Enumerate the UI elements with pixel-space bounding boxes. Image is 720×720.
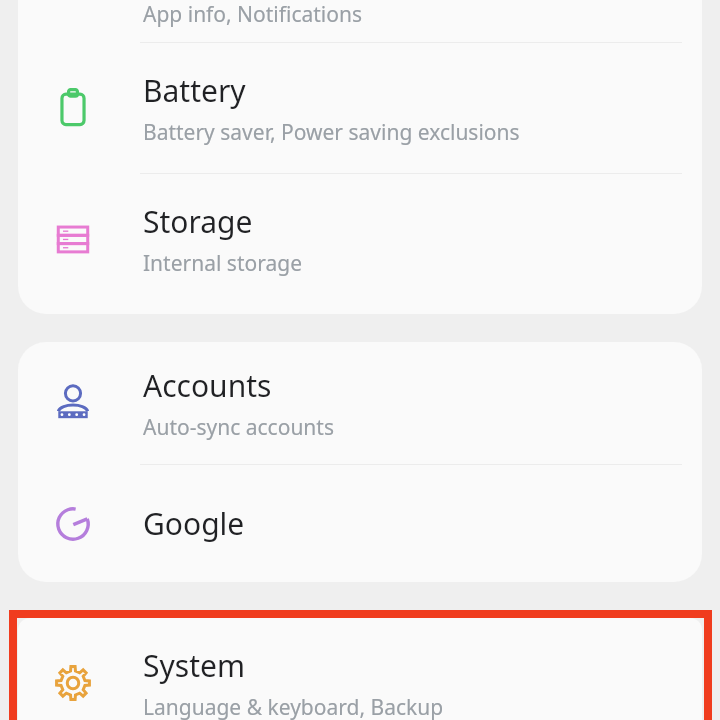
other: Accounts — [50, 380, 96, 426]
other: Battery — [50, 85, 96, 131]
staticText: System — [143, 645, 245, 686]
button[interactable]: Google — [18, 465, 702, 582]
other: System — [50, 660, 96, 706]
other: Storage — [50, 216, 96, 262]
button[interactable]: Storage — [18, 174, 702, 304]
button[interactable]: Apps — [18, 0, 702, 42]
button[interactable]: Battery — [18, 43, 702, 173]
staticText: Internal storage — [143, 249, 302, 278]
staticText: Auto-sync accounts — [143, 413, 334, 442]
staticText: Battery — [143, 70, 246, 111]
staticText: Google — [143, 503, 245, 544]
staticText: Storage — [143, 201, 253, 242]
staticText: App info, Notifications — [143, 0, 363, 29]
other: Google — [50, 501, 96, 547]
staticText: Battery saver, Power saving exclusions — [143, 118, 520, 147]
button[interactable]: System — [18, 618, 702, 720]
staticText: Language & keyboard, Backup — [143, 693, 444, 720]
button[interactable]: Accounts — [18, 342, 702, 464]
staticText: Accounts — [143, 365, 272, 406]
